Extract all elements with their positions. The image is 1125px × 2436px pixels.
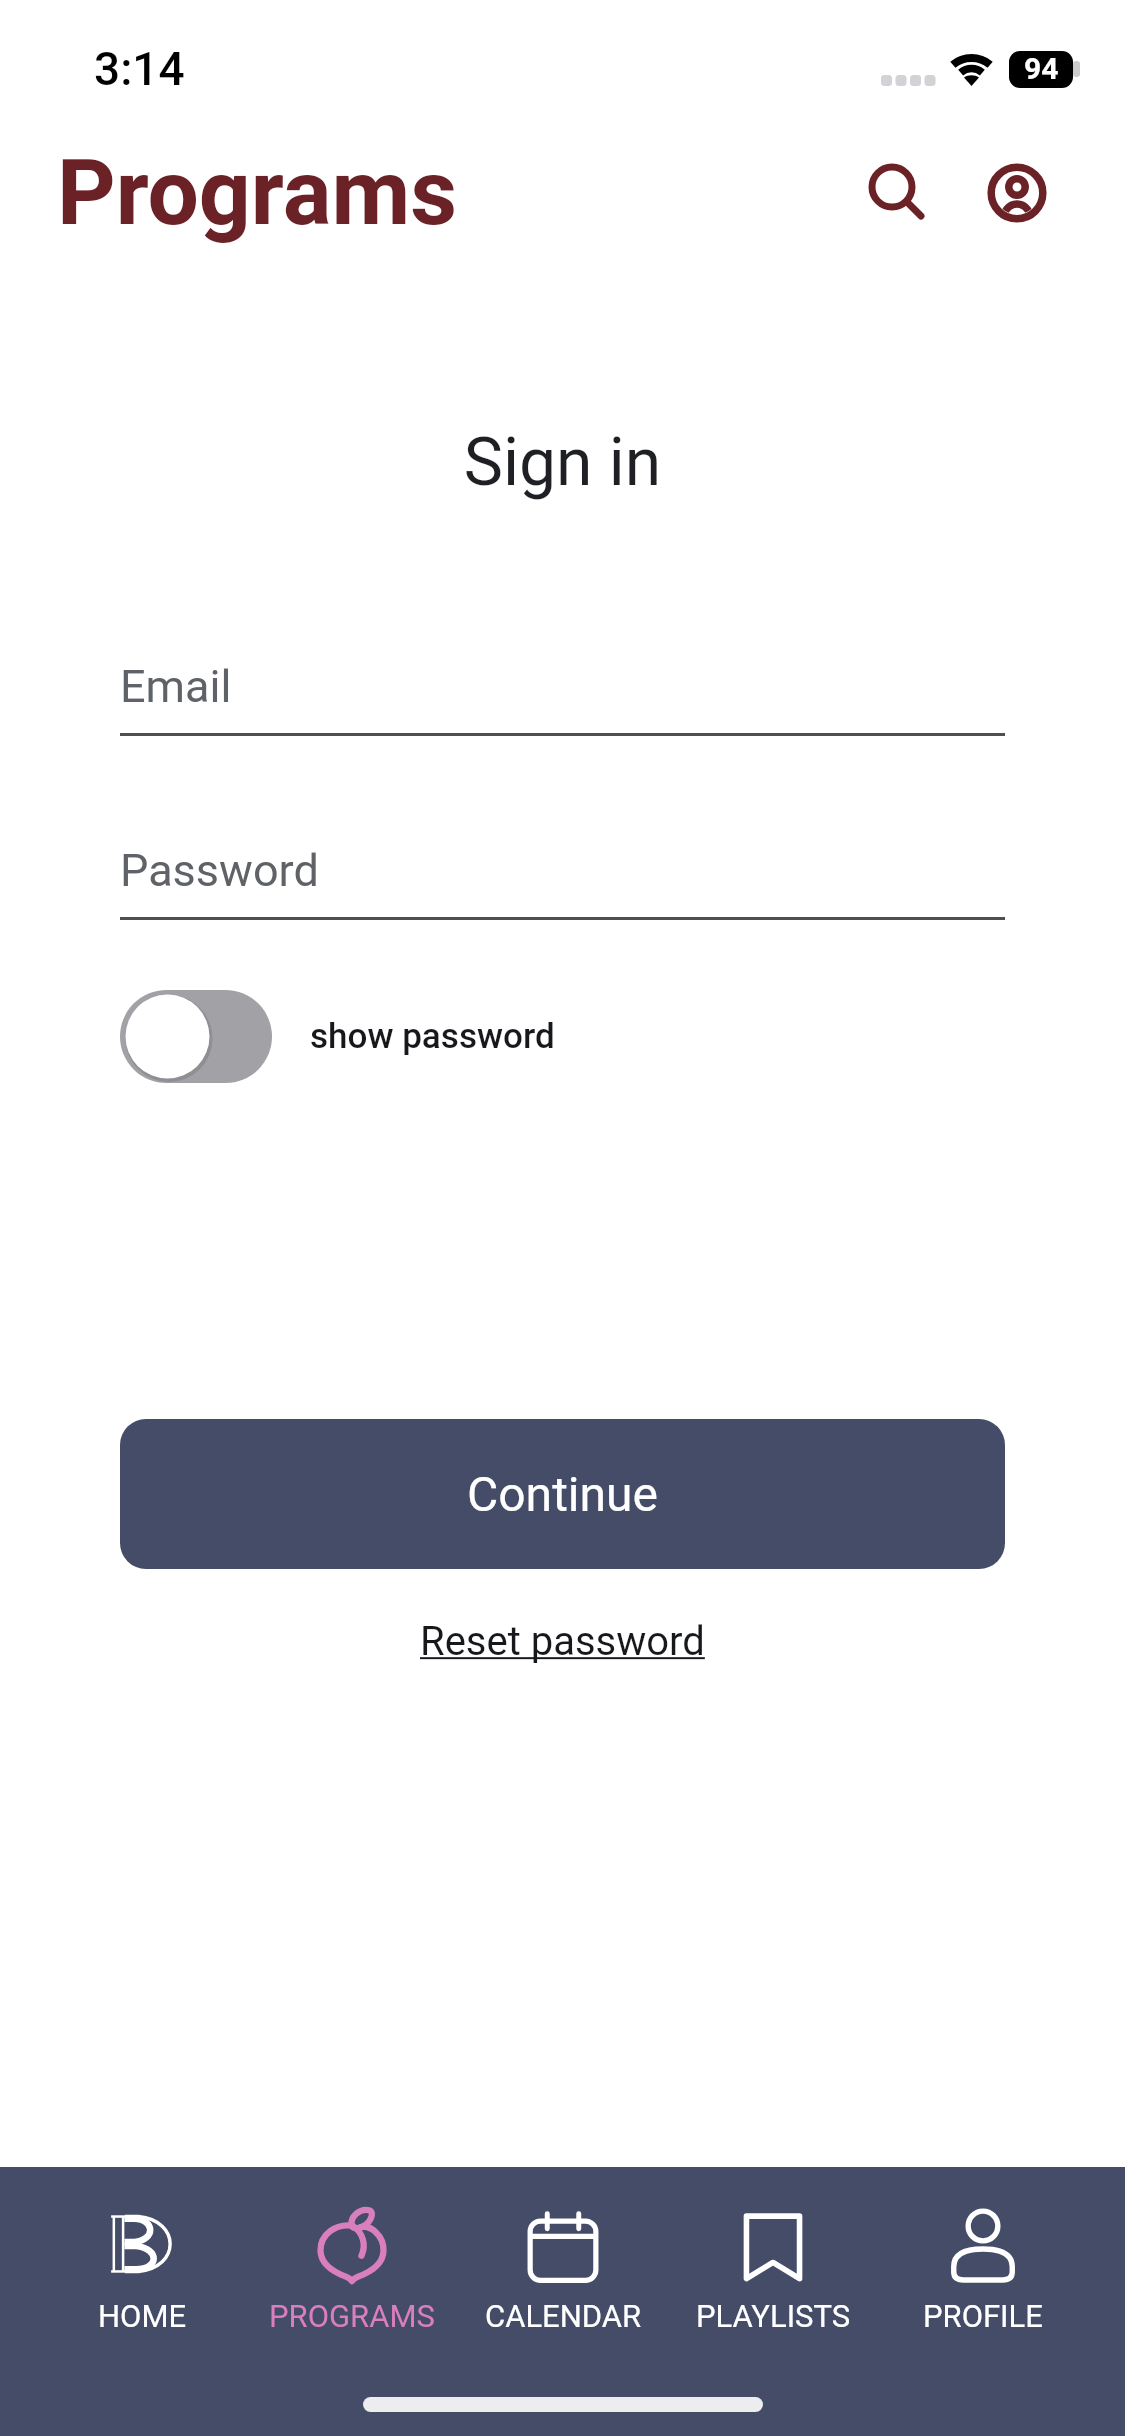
- button[interactable]: Reset password: [420, 1618, 705, 1665]
- button[interactable]: PROFILE: [878, 2199, 1088, 2364]
- button[interactable]: Continue: [120, 1419, 1005, 1569]
- staticText: Sign in: [0, 424, 1125, 501]
- button[interactable]: CALENDAR: [458, 2199, 668, 2364]
- staticText: HOME: [98, 2298, 187, 2334]
- button[interactable]: Search: [833, 125, 953, 245]
- button[interactable]: PLAYLISTS: [668, 2199, 878, 2364]
- button[interactable]: Password: [120, 844, 1005, 920]
- staticText: Email: [120, 660, 232, 713]
- staticText: show password: [310, 1016, 555, 1057]
- button[interactable]: Email: [120, 660, 1005, 736]
- staticText: Continue: [467, 1466, 658, 1522]
- button[interactable]: show password: [120, 990, 1005, 1083]
- staticText: PLAYLISTS: [696, 2298, 851, 2334]
- staticText: 3:14: [94, 42, 185, 96]
- staticText: CALENDAR: [485, 2298, 642, 2334]
- button[interactable]: Account: [957, 133, 1077, 253]
- staticText: Password: [120, 844, 319, 897]
- staticText: PROGRAMS: [269, 2298, 435, 2334]
- staticText: PROFILE: [923, 2298, 1043, 2334]
- button[interactable]: PROGRAMS: [247, 2199, 457, 2364]
- staticText: Programs: [57, 140, 458, 247]
- staticText: 94: [1024, 51, 1059, 86]
- button[interactable]: HOME: [37, 2199, 247, 2364]
